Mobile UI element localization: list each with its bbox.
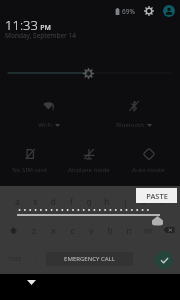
staticText: k — [141, 196, 146, 208]
button[interactable]: Auto-rotate — [119, 142, 178, 178]
button[interactable]: No SIM card — [0, 142, 59, 178]
button[interactable]: h — [98, 193, 116, 211]
button[interactable]: k — [134, 193, 152, 211]
staticText: c — [70, 225, 75, 237]
staticText: d — [50, 196, 56, 208]
button[interactable]: Switch user — [162, 4, 176, 18]
staticText: No SIM card — [12, 166, 47, 174]
staticText: Wi-Fi — [38, 121, 52, 129]
staticText: a — [15, 196, 20, 208]
button[interactable]: Wi-Fi — [4, 92, 93, 136]
button[interactable]: Settings — [142, 4, 156, 18]
button[interactable]: Shift — [5, 222, 21, 238]
button[interactable]: g — [80, 193, 98, 211]
button[interactable]: Bluetooth — [89, 92, 178, 136]
button[interactable]: f — [62, 193, 80, 211]
staticText: v — [89, 225, 94, 237]
staticText: Bluetooth — [116, 121, 144, 129]
button[interactable]: m — [139, 222, 157, 240]
staticText: Monday, September 14 — [5, 31, 76, 40]
staticText: l — [160, 196, 163, 208]
staticText: 69% — [122, 7, 135, 16]
staticText: Auto-rotate — [132, 166, 165, 174]
staticText: b — [107, 225, 113, 237]
button[interactable]: a — [8, 193, 26, 211]
button[interactable]: j — [116, 193, 134, 211]
staticText: j — [124, 196, 127, 208]
staticText: EMERGENCY CALL — [64, 255, 115, 263]
staticText: x — [51, 225, 56, 237]
staticText: PASTE — [146, 191, 168, 201]
button[interactable]: d — [44, 193, 62, 211]
staticText: ?123 — [8, 255, 21, 263]
staticText: h — [104, 196, 110, 208]
button[interactable]: b — [101, 222, 119, 240]
staticText: 11:33 — [5, 16, 38, 34]
staticText: PM — [40, 23, 51, 33]
button[interactable]: Airplane mode — [59, 142, 118, 178]
button[interactable]: PASTE — [136, 188, 177, 203]
button[interactable]: l — [152, 193, 170, 211]
button[interactable]: Close keyboard — [24, 275, 39, 290]
staticText: s — [33, 196, 38, 208]
staticText: f — [70, 196, 73, 208]
button[interactable]: EMERGENCY CALL — [46, 252, 133, 266]
staticText: n — [126, 225, 132, 237]
button[interactable]: s — [26, 193, 44, 211]
button[interactable]: Backspace — [161, 222, 177, 238]
button[interactable]: Brightness — [81, 66, 95, 80]
button[interactable]: Enter — [155, 251, 173, 269]
staticText: g — [86, 196, 92, 208]
staticText: z — [32, 225, 36, 237]
staticText: m — [144, 225, 152, 237]
staticText: Airplane mode — [68, 166, 110, 174]
